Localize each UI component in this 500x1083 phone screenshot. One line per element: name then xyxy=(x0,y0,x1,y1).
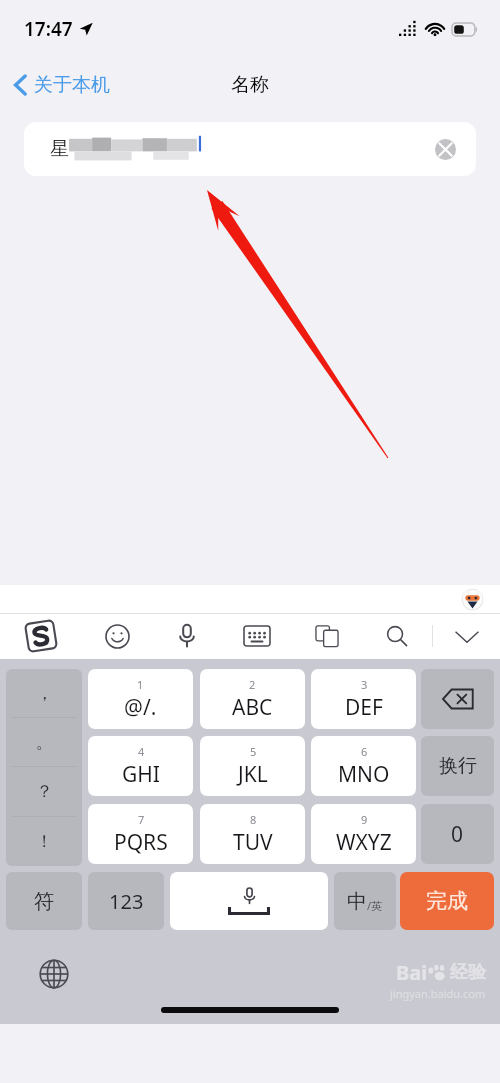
button[interactable]: Space, voice input xyxy=(170,872,328,930)
staticText: ？ xyxy=(36,781,53,802)
staticText: MNO xyxy=(338,760,390,789)
staticText: DEF xyxy=(345,693,383,722)
staticText: ABC xyxy=(232,693,273,722)
staticText: GHI xyxy=(122,760,160,789)
staticText: TUV xyxy=(233,828,273,857)
staticText: 7 xyxy=(138,812,145,827)
button[interactable]: 8 xyxy=(200,804,305,864)
staticText: 名称 xyxy=(231,73,269,97)
staticText: 完成 xyxy=(426,888,468,914)
button[interactable]: 0 xyxy=(421,804,494,864)
button[interactable]: Keyboard layout xyxy=(222,613,292,659)
button[interactable]: Backspace xyxy=(421,669,494,729)
button[interactable]: Switch keyboard language xyxy=(34,954,74,994)
button[interactable]: 星 xyxy=(24,122,476,176)
button[interactable]: 1 xyxy=(88,669,193,729)
staticText: 中 xyxy=(347,889,367,914)
staticText: 关于本机 xyxy=(34,73,110,97)
staticText: Bai xyxy=(396,959,428,986)
staticText: ！ xyxy=(36,831,53,852)
button[interactable]: 关于本机 xyxy=(0,67,120,103)
staticText: 1 xyxy=(137,677,144,692)
staticText: @/. xyxy=(124,693,157,722)
staticText: 换行 xyxy=(439,754,477,778)
staticText: JKL xyxy=(238,760,268,789)
button[interactable]: Sogou mascot xyxy=(460,587,484,611)
staticText: 符 xyxy=(34,889,54,914)
button[interactable]: 5 xyxy=(200,736,305,796)
staticText: 17:47 xyxy=(24,16,73,42)
button[interactable]: 6 xyxy=(311,736,416,796)
button[interactable]: Emoji xyxy=(82,613,152,659)
button[interactable]: 符 xyxy=(6,872,82,930)
button[interactable]: 9 xyxy=(311,804,416,864)
staticText: 4 xyxy=(138,744,145,759)
staticText: 经验 xyxy=(450,961,486,984)
staticText: jingyan.baidu.com xyxy=(390,986,486,1001)
staticText: 。 xyxy=(36,732,53,753)
staticText: 0 xyxy=(451,820,464,849)
staticText: 123 xyxy=(109,888,144,915)
staticText: 6 xyxy=(361,744,368,759)
staticText: 8 xyxy=(250,812,257,827)
button[interactable]: Collapse keyboard xyxy=(433,613,500,659)
button[interactable]: 7 xyxy=(88,804,193,864)
button[interactable]: Clear text xyxy=(428,132,462,166)
staticText: 星 xyxy=(50,137,69,161)
button[interactable]: 123 xyxy=(88,872,164,930)
button[interactable]: Search xyxy=(362,613,432,659)
staticText: 2 xyxy=(249,677,256,692)
staticText: PQRS xyxy=(114,828,168,857)
button[interactable]: Chinese English toggle xyxy=(334,872,396,930)
staticText: 3 xyxy=(361,677,368,692)
button[interactable]: Sogou input xyxy=(0,613,82,659)
button[interactable]: Punctuation xyxy=(6,669,82,866)
button[interactable]: 3 xyxy=(311,669,416,729)
button[interactable]: 4 xyxy=(88,736,193,796)
button[interactable]: Translate xyxy=(292,613,362,659)
staticText: /英 xyxy=(367,898,383,913)
button[interactable]: 2 xyxy=(200,669,305,729)
staticText: 5 xyxy=(250,744,257,759)
staticText: 9 xyxy=(361,812,368,827)
button[interactable]: Voice input xyxy=(152,613,222,659)
button[interactable]: 换行 xyxy=(421,736,494,796)
button[interactable]: 完成 xyxy=(400,872,494,930)
staticText: ， xyxy=(36,683,53,704)
staticText: WXYZ xyxy=(336,828,392,857)
